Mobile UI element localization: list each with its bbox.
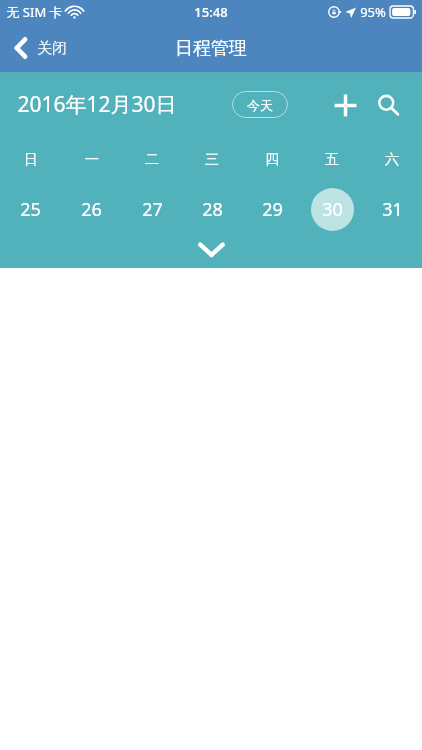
button[interactable]: 26 bbox=[61, 184, 122, 234]
button[interactable]: 27 bbox=[122, 184, 182, 234]
button[interactable]: 28 bbox=[182, 184, 242, 234]
staticText: 15:48 bbox=[194, 3, 228, 21]
button[interactable]: 30 bbox=[302, 184, 362, 234]
staticText: 26 bbox=[81, 197, 102, 222]
staticText: 五 bbox=[325, 151, 339, 169]
staticText: 无 SIM 卡 bbox=[6, 3, 63, 21]
button[interactable]: 今天 bbox=[232, 91, 288, 118]
staticText: 日 bbox=[24, 151, 38, 169]
staticText: 95% bbox=[360, 3, 386, 21]
button[interactable]: 31 bbox=[362, 184, 422, 234]
staticText: 25 bbox=[20, 197, 41, 222]
staticText: 四 bbox=[265, 151, 279, 169]
staticText: 一 bbox=[85, 151, 99, 169]
staticText: 三 bbox=[205, 151, 219, 169]
staticText: 日程管理 bbox=[175, 37, 247, 60]
button[interactable]: Expand calendar bbox=[181, 234, 241, 264]
staticText: 30 bbox=[322, 197, 343, 222]
staticText: 二 bbox=[145, 151, 159, 169]
staticText: 今天 bbox=[247, 97, 273, 113]
staticText: 27 bbox=[142, 197, 163, 222]
staticText: 六 bbox=[385, 151, 399, 169]
staticText: 2016年12月30日 bbox=[17, 90, 177, 119]
button[interactable]: Add event bbox=[324, 84, 366, 126]
button[interactable]: Search bbox=[367, 84, 409, 126]
staticText: 关闭 bbox=[37, 39, 67, 58]
staticText: 28 bbox=[202, 197, 223, 222]
button[interactable]: 29 bbox=[242, 184, 302, 234]
button[interactable]: 25 bbox=[0, 184, 61, 234]
staticText: 31 bbox=[382, 197, 403, 222]
button[interactable]: 关闭 bbox=[0, 29, 81, 67]
staticText: 29 bbox=[262, 197, 283, 222]
